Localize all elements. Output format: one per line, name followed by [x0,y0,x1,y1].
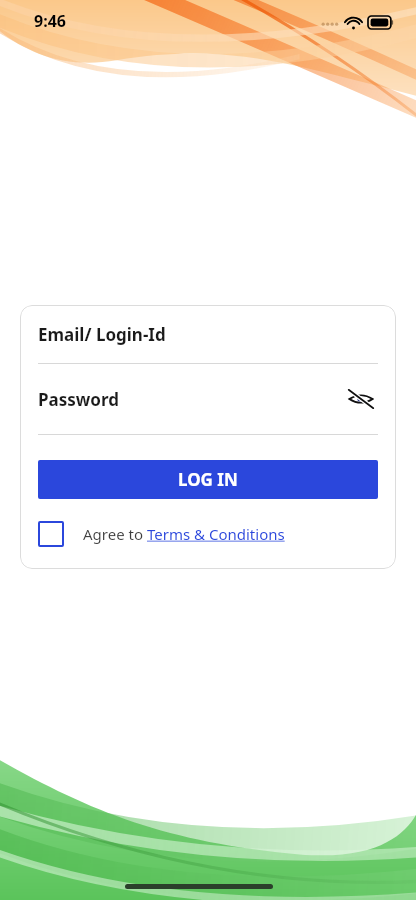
staticText: Password [38,388,344,411]
staticText: Terms & Conditions [147,524,285,544]
button[interactable]: Agree to Terms and Conditions [38,521,64,547]
staticText: 9:46 [34,10,66,32]
button[interactable]: Email/ Login-Id [38,305,378,363]
staticText: Agree to [83,524,147,544]
button[interactable]: Password [38,364,378,434]
button[interactable]: LOG IN [38,460,378,499]
button[interactable]: Show password [344,382,378,416]
staticText: LOG IN [178,468,238,491]
button[interactable]: Terms & Conditions [147,524,285,544]
staticText: Email/ Login-Id [38,323,166,346]
